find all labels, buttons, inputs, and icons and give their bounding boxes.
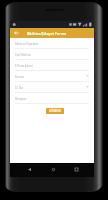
staticText: Bildirim/Şikayet Formu [27,31,67,36]
button[interactable]: Cep Telefonu [15,49,89,60]
staticText: E-Posta Adresi [15,64,33,68]
button[interactable]: GÖNDER [46,108,64,114]
staticText: Adınız ve Soyadınız [15,42,39,46]
button[interactable]: Recent apps [70,163,82,175]
button[interactable]: Adınız ve Soyadınız [15,38,89,49]
button[interactable]: İl / İlçe [15,82,89,93]
staticText: Konusu [15,75,25,79]
staticText: Cep Telefonu [15,53,31,57]
button[interactable]: Back [11,28,22,38]
staticText: Mesajınız [15,97,27,101]
button[interactable]: Back [23,163,35,175]
button[interactable]: Home [47,163,59,175]
staticText: İl / İlçe [15,86,24,90]
button[interactable]: Mesajınız [15,93,89,104]
button[interactable]: E-Posta Adresi [15,60,89,71]
button[interactable]: Konusu [15,71,89,82]
staticText: GÖNDER [49,109,61,113]
